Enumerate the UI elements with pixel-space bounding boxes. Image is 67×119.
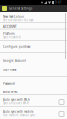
staticText: Google Account	[3, 59, 26, 62]
button[interactable]: Google Account	[0, 53, 67, 66]
staticText: General Settings	[9, 7, 32, 10]
staticText: New Task Colour	[3, 15, 24, 18]
staticText: Auto sync with mobile	[3, 110, 34, 113]
staticText: Use mobile data to sync	[3, 113, 35, 117]
button[interactable]: Platform	[0, 29, 67, 40]
staticText: Sync enabled	[3, 35, 21, 39]
button[interactable]: Auto sync with mobile	[0, 107, 67, 118]
staticText: AUTO SYNC	[3, 90, 18, 93]
staticText: Set a reminder for task	[3, 18, 33, 22]
button[interactable]: App home	[2, 6, 7, 11]
staticText: ACCOUNT	[3, 25, 17, 28]
staticText: Password	[3, 82, 15, 85]
button[interactable]: Password	[0, 77, 67, 88]
button[interactable]: New Task Colour	[0, 12, 67, 22]
button[interactable]: User name	[0, 66, 67, 76]
button[interactable]: Configure purchase	[0, 41, 67, 52]
button[interactable]: Auto sync with Wi-Fi	[0, 95, 67, 106]
staticText: User name	[3, 68, 17, 71]
staticText: Auto sync with Wi-Fi	[3, 98, 30, 101]
staticText: Platform	[3, 32, 14, 35]
staticText: Sync only over Wi-Fi	[3, 101, 29, 105]
staticText: Configure purchase	[3, 45, 31, 48]
staticText: 9:41	[55, 1, 62, 4]
